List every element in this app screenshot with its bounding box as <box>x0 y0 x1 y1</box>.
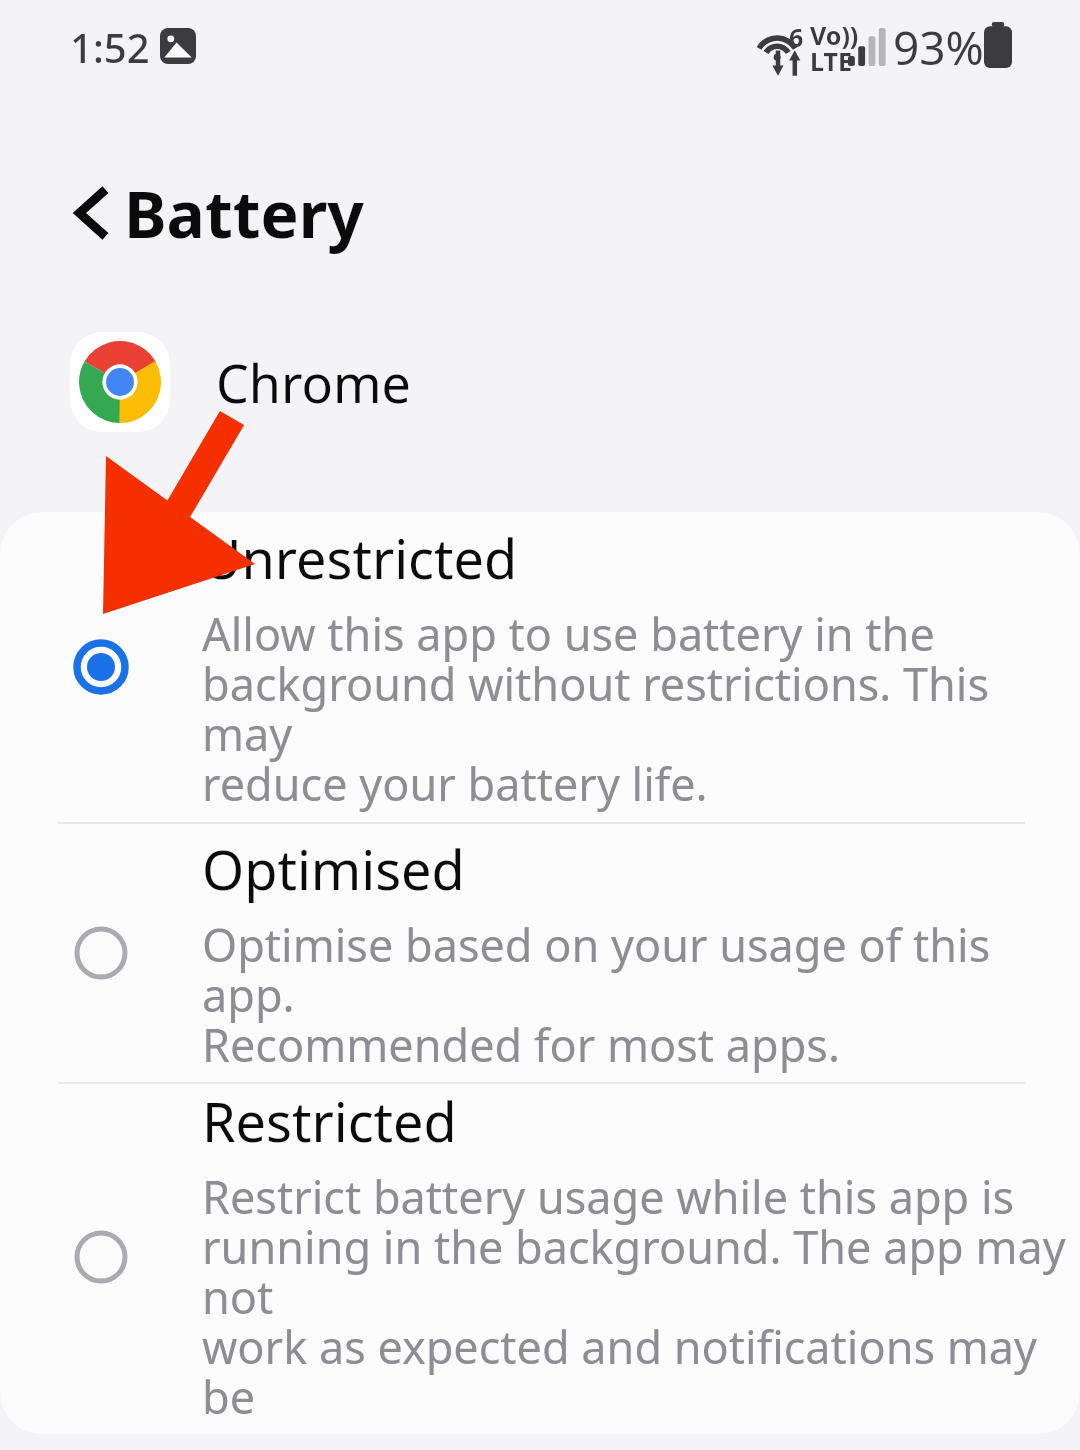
staticText: LTE <box>810 44 852 78</box>
staticText: Battery <box>124 170 364 257</box>
button[interactable]: Restricted <box>0 1084 1080 1429</box>
button[interactable]: Back <box>42 161 146 265</box>
staticText: Chrome <box>216 347 411 418</box>
staticText: 1:52 <box>70 20 150 74</box>
staticText: Optimised <box>202 832 465 906</box>
staticText: Restrict battery usage while this app is… <box>202 1166 1080 1429</box>
staticText: Optimise based on your usage of this app… <box>202 914 1080 1075</box>
button[interactable]: Unrestricted <box>0 512 1080 822</box>
staticText: 93% <box>893 16 984 79</box>
staticText: 6 <box>789 20 804 54</box>
staticText: Allow this app to use battery in the bac… <box>202 603 1080 814</box>
staticText: Unrestricted <box>202 521 518 595</box>
staticText: Vo)) <box>810 18 859 52</box>
staticText: Restricted <box>202 1084 457 1158</box>
button[interactable]: Optimised <box>0 824 1080 1082</box>
